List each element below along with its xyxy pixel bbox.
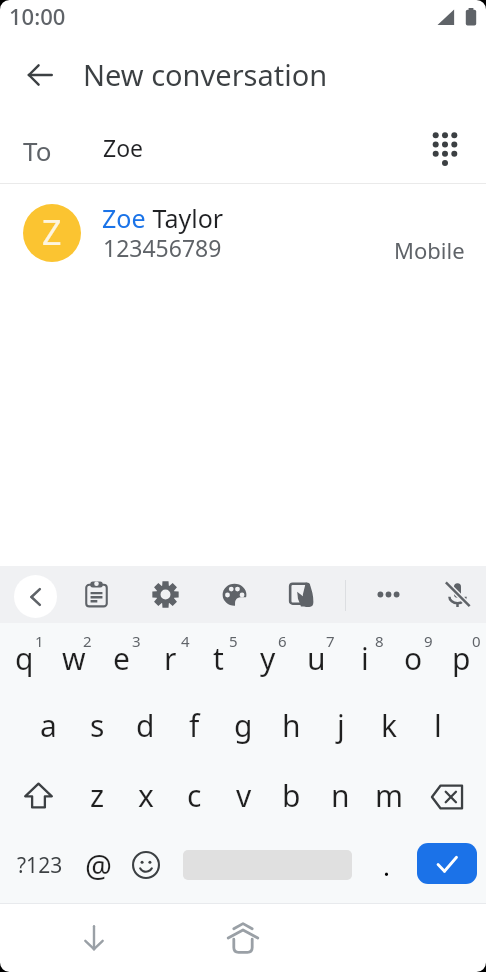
staticText: j (337, 705, 345, 746)
button[interactable]: Enter (408, 829, 486, 897)
button[interactable]: More options (366, 572, 410, 616)
staticText: s (90, 705, 105, 746)
staticText: d (136, 705, 155, 746)
button[interactable]: ?123 (0, 831, 80, 899)
staticText: m (375, 775, 404, 816)
button[interactable]: x (121, 761, 170, 829)
staticText: g (234, 705, 253, 746)
staticText: n (331, 775, 350, 816)
button[interactable]: h (267, 691, 316, 759)
button[interactable]: l (413, 691, 462, 759)
staticText: e (113, 638, 130, 679)
staticText: x (138, 775, 154, 816)
staticText: Mobile (394, 235, 465, 265)
button[interactable]: Themes (212, 572, 256, 616)
staticText: w (62, 638, 86, 679)
staticText: . (383, 848, 390, 883)
staticText: 7 (326, 631, 335, 647)
staticText: 4 (181, 631, 190, 647)
button[interactable]: a (24, 691, 73, 759)
staticText: 9 (424, 631, 433, 647)
button[interactable]: Space (170, 831, 364, 899)
staticText: k (381, 705, 398, 746)
button[interactable]: k (365, 691, 414, 759)
button[interactable]: i (340, 624, 389, 692)
button[interactable]: Settings (143, 572, 187, 616)
staticText: To (23, 133, 52, 168)
button[interactable]: Hide keyboard (70, 914, 118, 962)
staticText: p (452, 638, 471, 679)
button[interactable]: s (73, 691, 122, 759)
staticText: New conversation (83, 55, 328, 94)
button[interactable]: Shift (2, 761, 75, 829)
staticText: i (361, 638, 369, 679)
staticText: 10:00 (9, 1, 66, 31)
button[interactable]: q (0, 624, 49, 692)
button[interactable]: p (437, 624, 486, 692)
button[interactable]: Emoji (122, 831, 170, 899)
staticText: y (260, 638, 276, 679)
staticText: t (213, 638, 224, 679)
button[interactable]: . (364, 831, 408, 899)
button[interactable]: Voice input off (435, 572, 479, 616)
button[interactable]: w (49, 624, 98, 692)
staticText: r (164, 638, 177, 679)
button[interactable]: z (73, 761, 122, 829)
staticText: Zoe (102, 201, 146, 235)
staticText: b (282, 775, 301, 816)
button[interactable]: Back (16, 51, 64, 99)
staticText: 3 (132, 631, 141, 647)
staticText: a (40, 705, 57, 746)
staticText: Zoe (103, 132, 144, 163)
staticText: Taylor (146, 201, 224, 235)
button[interactable]: f (170, 691, 219, 759)
button[interactable]: n (316, 761, 365, 829)
button[interactable]: y (243, 624, 292, 692)
staticText: 5 (229, 631, 238, 647)
staticText: 1 (35, 631, 44, 647)
button[interactable]: Clipboard (74, 572, 118, 616)
button[interactable]: Dialpad (422, 125, 468, 171)
button[interactable]: t (194, 624, 243, 692)
button[interactable]: b (267, 761, 316, 829)
button[interactable]: o (389, 624, 438, 692)
staticText: v (236, 775, 252, 816)
staticText: c (187, 775, 202, 816)
button[interactable]: m (365, 761, 414, 829)
staticText: Z (42, 209, 62, 255)
staticText: 8 (375, 631, 384, 647)
button[interactable]: e (97, 624, 146, 692)
button[interactable]: Handwriting (279, 572, 323, 616)
staticText: h (282, 705, 301, 746)
button[interactable]: j (316, 691, 365, 759)
button[interactable]: d (121, 691, 170, 759)
staticText: z (90, 775, 105, 816)
button[interactable]: Home (219, 914, 267, 962)
staticText: f (189, 705, 200, 746)
staticText: @ (85, 845, 112, 886)
staticText: l (434, 705, 442, 746)
button[interactable]: Collapse toolbar (14, 575, 57, 618)
button[interactable]: u (292, 624, 341, 692)
staticText: 6 (278, 631, 287, 647)
staticText: 0 (472, 631, 481, 647)
button[interactable]: @ (74, 831, 122, 899)
staticText: 123456789 (103, 232, 222, 263)
button[interactable]: Backspace (410, 763, 483, 831)
staticText: q (15, 638, 34, 679)
button[interactable]: g (219, 691, 268, 759)
staticText: u (307, 638, 326, 679)
staticText: ?123 (17, 851, 63, 880)
button[interactable]: c (170, 761, 219, 829)
button[interactable] (0, 181, 486, 285)
button[interactable]: r (146, 624, 195, 692)
button[interactable]: v (219, 761, 268, 829)
staticText: 2 (83, 631, 92, 647)
staticText: o (404, 638, 423, 679)
